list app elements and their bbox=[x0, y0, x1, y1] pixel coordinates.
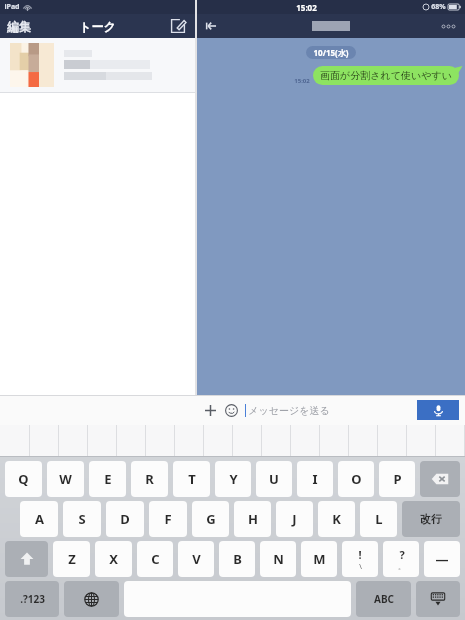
staticText: G bbox=[206, 510, 216, 528]
button[interactable]: .?123 bbox=[5, 581, 59, 617]
button[interactable]: B bbox=[219, 541, 255, 577]
button[interactable]: Z bbox=[53, 541, 90, 577]
button[interactable]: K bbox=[318, 501, 355, 537]
button[interactable] bbox=[146, 425, 175, 457]
button[interactable]: Backspace bbox=[420, 461, 460, 497]
staticText: I bbox=[312, 470, 318, 488]
staticText: 15:02 bbox=[294, 77, 310, 85]
staticText: H bbox=[248, 510, 258, 528]
button[interactable]: More options bbox=[438, 16, 458, 36]
button[interactable]: I bbox=[297, 461, 333, 497]
button[interactable]: D bbox=[106, 501, 144, 537]
staticText: X bbox=[109, 550, 118, 568]
staticText: B bbox=[233, 550, 242, 568]
button[interactable]: L bbox=[360, 501, 397, 537]
button[interactable]: A bbox=[20, 501, 58, 537]
button[interactable]: ! bbox=[342, 541, 378, 577]
staticText: 10/15(水) bbox=[313, 47, 349, 58]
button[interactable]: E bbox=[89, 461, 126, 497]
button[interactable]: M bbox=[301, 541, 337, 577]
button[interactable]: V bbox=[178, 541, 214, 577]
button[interactable] bbox=[0, 38, 195, 92]
button[interactable]: S bbox=[63, 501, 101, 537]
button[interactable]: U bbox=[256, 461, 292, 497]
staticText: Y bbox=[229, 470, 238, 488]
staticText: ABC bbox=[374, 592, 394, 606]
button[interactable] bbox=[117, 425, 146, 457]
button[interactable] bbox=[175, 425, 204, 457]
button[interactable] bbox=[88, 425, 117, 457]
button[interactable]: O bbox=[338, 461, 374, 497]
staticText: F bbox=[164, 510, 172, 528]
button[interactable]: Back bbox=[202, 17, 220, 35]
staticText: C bbox=[151, 550, 160, 568]
staticText: ? bbox=[399, 547, 405, 562]
button[interactable]: 編集 bbox=[5, 16, 33, 37]
button[interactable] bbox=[436, 425, 465, 457]
button[interactable] bbox=[262, 425, 291, 457]
button[interactable]: ABC bbox=[356, 581, 411, 617]
button[interactable]: New message bbox=[169, 17, 187, 35]
staticText: 。 bbox=[398, 562, 405, 571]
button[interactable]: P bbox=[379, 461, 415, 497]
staticText: \ bbox=[359, 562, 362, 572]
button[interactable]: — bbox=[424, 541, 460, 577]
button[interactable] bbox=[320, 425, 349, 457]
staticText: ! bbox=[358, 547, 362, 562]
staticText: J bbox=[292, 510, 297, 528]
button[interactable]: H bbox=[234, 501, 271, 537]
button[interactable] bbox=[233, 425, 262, 457]
button[interactable]: G bbox=[192, 501, 229, 537]
button[interactable]: N bbox=[260, 541, 296, 577]
button[interactable]: T bbox=[173, 461, 210, 497]
staticText: K bbox=[332, 510, 341, 528]
button[interactable] bbox=[59, 425, 88, 457]
button[interactable]: Change keyboard bbox=[64, 581, 119, 617]
staticText: Z bbox=[68, 550, 76, 568]
staticText: T bbox=[188, 470, 196, 488]
button[interactable]: 改行 bbox=[402, 501, 460, 537]
button[interactable] bbox=[349, 425, 378, 457]
staticText: A bbox=[35, 510, 44, 528]
button[interactable]: Hide keyboard bbox=[416, 581, 460, 617]
button[interactable]: F bbox=[149, 501, 187, 537]
staticText: D bbox=[120, 510, 130, 528]
staticText: トーク bbox=[79, 19, 116, 34]
button[interactable]: Y bbox=[215, 461, 251, 497]
staticText: 編集 bbox=[7, 19, 31, 34]
staticText: 15:02 bbox=[296, 2, 317, 13]
button[interactable] bbox=[0, 425, 30, 457]
staticText: 改行 bbox=[420, 512, 442, 526]
button[interactable] bbox=[378, 425, 407, 457]
button[interactable]: Shift bbox=[5, 541, 48, 577]
staticText: M bbox=[313, 550, 326, 568]
staticText: 68% bbox=[431, 2, 446, 12]
staticText: iPad bbox=[4, 2, 20, 12]
button[interactable]: Emoji bbox=[224, 403, 239, 418]
staticText: O bbox=[351, 470, 362, 488]
button[interactable]: メッセージを送る bbox=[248, 404, 417, 417]
button[interactable]: X bbox=[95, 541, 132, 577]
button[interactable]: W bbox=[47, 461, 84, 497]
staticText: 画面が分割されて使いやすい bbox=[320, 69, 452, 82]
staticText: — bbox=[435, 550, 449, 568]
staticText: S bbox=[78, 510, 86, 528]
button[interactable] bbox=[407, 425, 436, 457]
button[interactable]: Q bbox=[5, 461, 42, 497]
staticText: N bbox=[273, 550, 284, 568]
staticText: V bbox=[192, 550, 201, 568]
staticText: メッセージを送る bbox=[248, 404, 330, 417]
staticText: L bbox=[375, 510, 383, 528]
button[interactable] bbox=[291, 425, 320, 457]
button[interactable]: Add attachment bbox=[202, 402, 219, 419]
staticText: E bbox=[104, 470, 112, 488]
button[interactable]: Voice message bbox=[417, 400, 459, 420]
button[interactable]: J bbox=[276, 501, 313, 537]
button[interactable]: C bbox=[137, 541, 173, 577]
button[interactable]: R bbox=[131, 461, 168, 497]
button[interactable]: ? bbox=[383, 541, 419, 577]
button[interactable] bbox=[30, 425, 59, 457]
button[interactable] bbox=[204, 425, 233, 457]
staticText: R bbox=[145, 470, 154, 488]
